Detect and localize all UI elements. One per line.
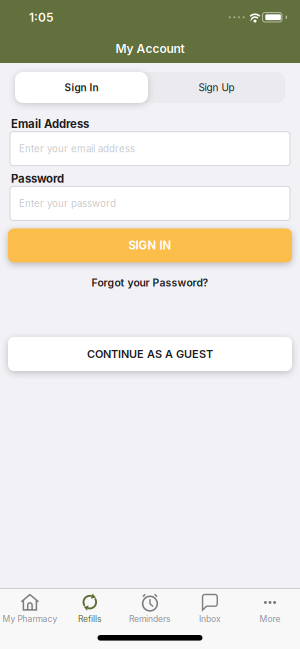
button[interactable]: Forgot your Password? (91, 276, 208, 289)
button[interactable]: Password (10, 186, 290, 220)
staticText: SIGN IN (128, 239, 171, 252)
staticText: CONTINUE AS A GUEST (87, 347, 213, 361)
staticText: Enter your password (19, 197, 116, 209)
button[interactable]: CONTINUE AS A GUEST (8, 337, 292, 371)
button[interactable]: Sign Up (148, 72, 285, 103)
staticText: 1:05 (29, 10, 54, 24)
staticText: Email Address (11, 117, 89, 131)
staticText: More (259, 614, 280, 624)
staticText: Inbox (199, 614, 221, 624)
button[interactable]: Reminders (120, 593, 180, 624)
button[interactable]: Sign In (15, 72, 148, 103)
staticText: Reminders (129, 614, 171, 624)
staticText: Password (11, 172, 64, 185)
staticText: My Account (115, 41, 184, 56)
button[interactable]: My Pharmacy (0, 593, 60, 624)
button[interactable]: Email Address (10, 132, 290, 166)
staticText: My Pharmacy (2, 614, 57, 624)
button[interactable]: SIGN IN (8, 228, 292, 262)
staticText: Sign In (64, 81, 98, 94)
staticText: Sign Up (198, 81, 234, 94)
button[interactable]: More (240, 593, 300, 624)
button[interactable]: Inbox (180, 593, 240, 624)
staticText: Enter your email address (19, 143, 135, 155)
staticText: Forgot your Password? (91, 276, 208, 289)
button[interactable]: Refills (60, 593, 120, 624)
staticText: Refills (78, 614, 102, 624)
